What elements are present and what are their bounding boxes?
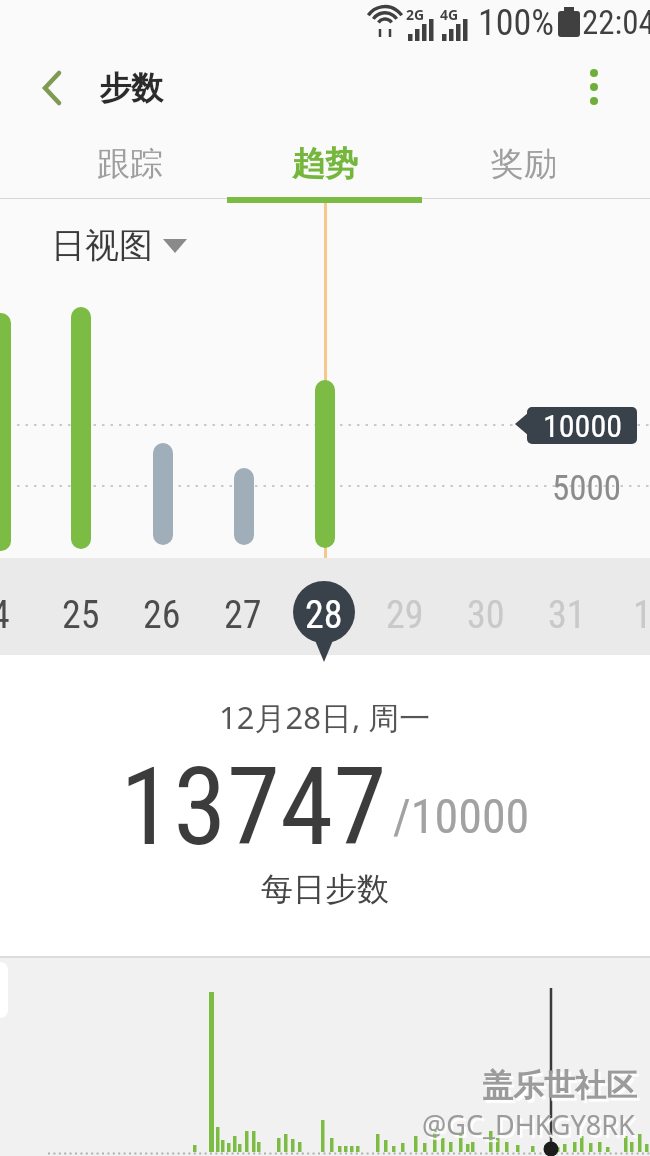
button[interactable]: 25 (41, 592, 121, 638)
button[interactable]: 26 (122, 592, 202, 638)
button[interactable]: 日视图 (51, 224, 187, 267)
staticText: 31 (548, 593, 586, 638)
staticText: 趋势 (292, 143, 358, 185)
staticText: 12月28日, 周一 (219, 696, 431, 738)
staticText: 22:04 (582, 3, 650, 42)
button[interactable] (568, 58, 620, 118)
staticText: 2G (406, 5, 425, 24)
staticText: 100% (478, 2, 555, 44)
button[interactable]: 跟踪 (40, 132, 220, 196)
staticText: 跟踪 (97, 143, 163, 185)
staticText: 4 (0, 593, 10, 638)
button[interactable]: 30 (446, 592, 526, 638)
staticText: 日视图 (51, 224, 153, 267)
button[interactable]: 28 (284, 592, 364, 638)
staticText: 29 (386, 593, 424, 638)
staticText: 5000 (552, 468, 622, 504)
staticText: 10000 (543, 407, 622, 444)
button[interactable] (30, 62, 74, 114)
staticText: 30 (467, 593, 505, 638)
button[interactable]: 趋势 (235, 132, 415, 196)
staticText: 25 (62, 593, 100, 638)
button[interactable]: 1/ (609, 592, 650, 638)
button[interactable]: 27 (203, 592, 283, 638)
staticText: 奖励 (491, 143, 557, 185)
staticText: /10000 (393, 788, 530, 844)
staticText: 26 (143, 593, 181, 638)
staticText: 每日步数 (261, 869, 389, 909)
button[interactable]: 29 (365, 592, 445, 638)
button[interactable]: 4 (0, 592, 40, 638)
staticText: @GC_DHKGY8RK (422, 1106, 635, 1143)
staticText: 28 (305, 593, 343, 638)
button[interactable]: 31 (527, 592, 607, 638)
staticText: 4G (440, 5, 459, 24)
staticText: 13747 (120, 744, 387, 871)
staticText: 1/ (633, 593, 650, 638)
button[interactable]: 奖励 (434, 132, 614, 196)
staticText: 盖乐世社区 (482, 1066, 637, 1105)
staticText: 27 (224, 593, 262, 638)
staticText: 步数 (99, 68, 163, 108)
